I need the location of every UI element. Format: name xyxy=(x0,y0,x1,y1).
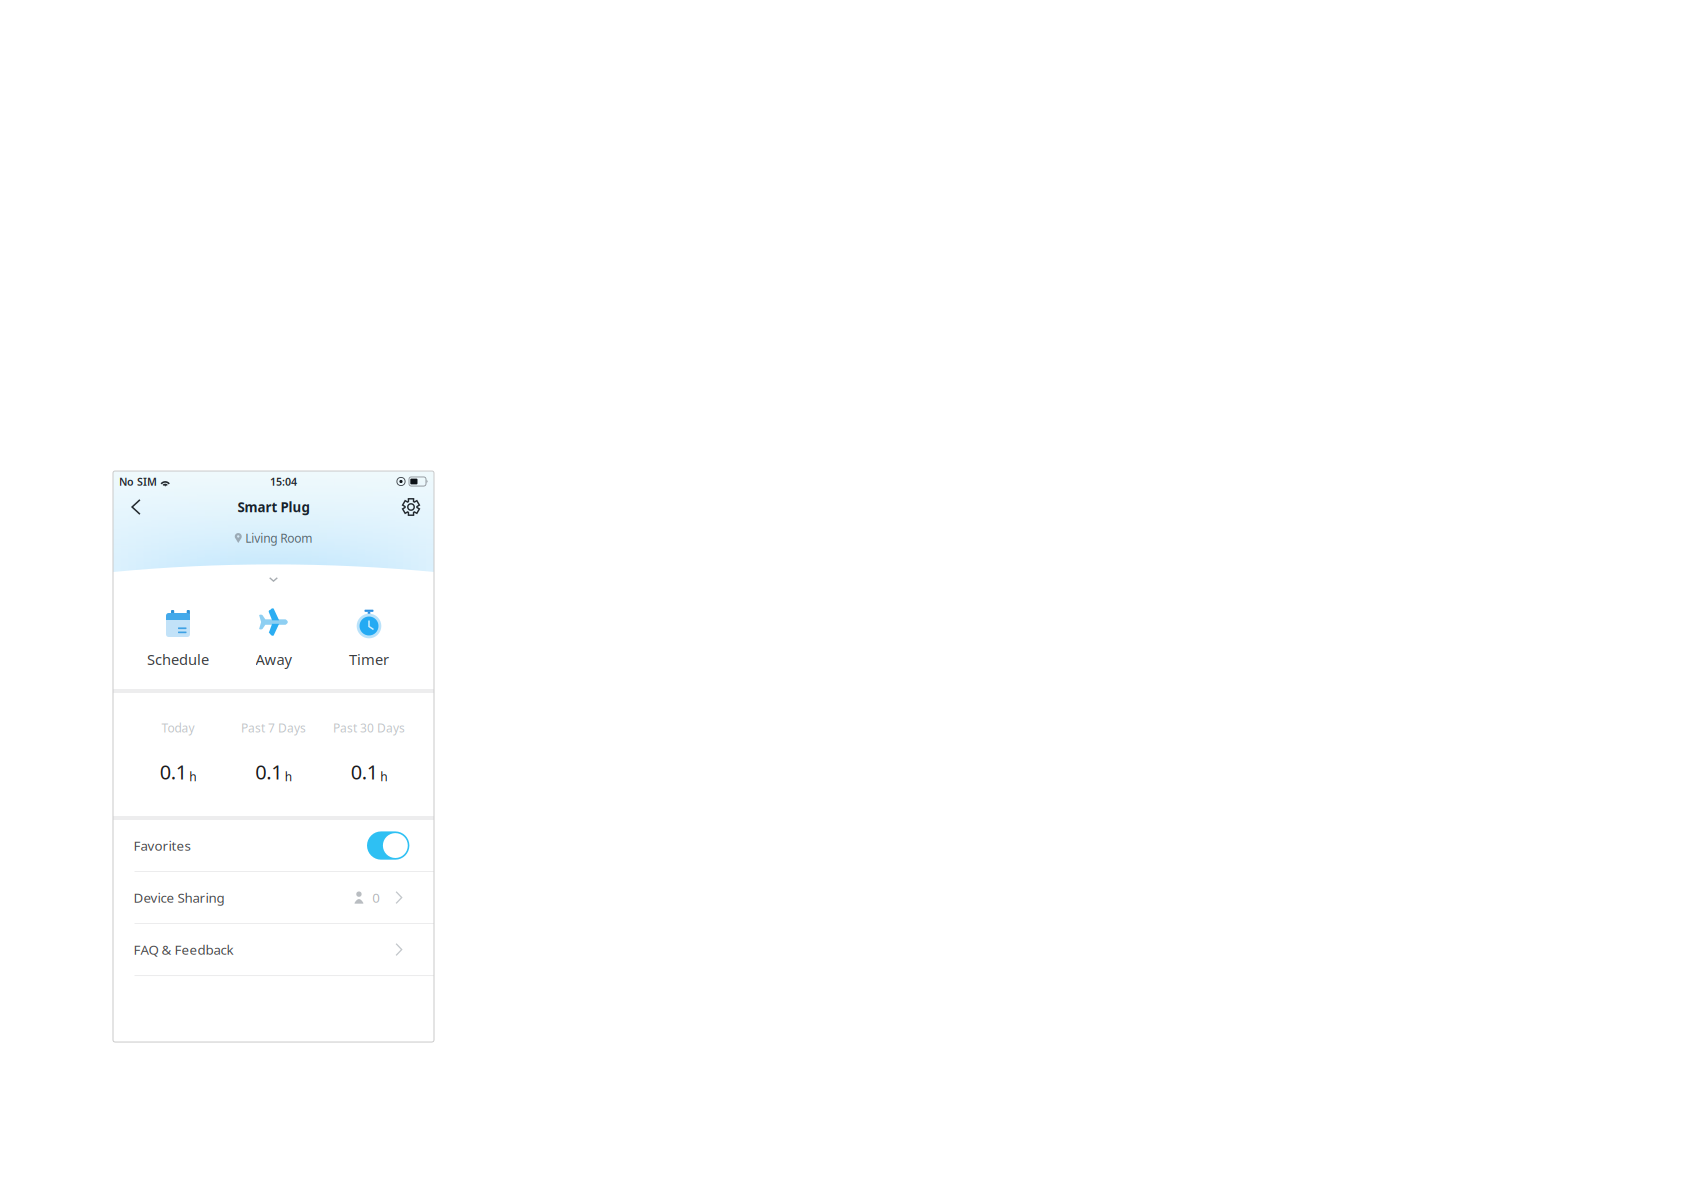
staticText: Living Room xyxy=(245,530,312,546)
staticText: 0.1 xyxy=(351,758,378,785)
staticText: No SIM xyxy=(119,474,157,489)
button[interactable]: Timer xyxy=(321,607,417,669)
staticText: 15:04 xyxy=(270,474,297,489)
staticText: Device Sharing xyxy=(133,889,224,906)
staticText: 0.1 xyxy=(160,758,187,785)
staticText: FAQ & Feedback xyxy=(133,941,233,958)
staticText: h xyxy=(189,769,196,784)
button[interactable]: Settings xyxy=(394,492,428,522)
staticText: Smart Plug xyxy=(237,498,309,516)
staticText: 0.1 xyxy=(255,758,282,785)
button[interactable]: Favorites xyxy=(113,820,434,872)
staticText: h xyxy=(285,769,292,784)
button[interactable]: Away xyxy=(226,607,321,669)
button[interactable]: Schedule xyxy=(130,607,226,669)
button[interactable]: Device Sharing xyxy=(113,872,434,924)
staticText: Past 30 Days xyxy=(333,720,405,736)
staticText: Past 7 Days xyxy=(241,720,306,736)
staticText: 0 xyxy=(372,889,380,906)
button[interactable]: Back xyxy=(119,492,153,522)
staticText: Today xyxy=(161,720,194,736)
staticText: h xyxy=(380,769,387,784)
staticText: Favorites xyxy=(133,837,190,854)
staticText: Schedule xyxy=(147,649,209,669)
staticText: Away xyxy=(255,649,291,669)
staticText: Timer xyxy=(349,649,389,669)
button[interactable]: FAQ & Feedback xyxy=(113,924,434,976)
